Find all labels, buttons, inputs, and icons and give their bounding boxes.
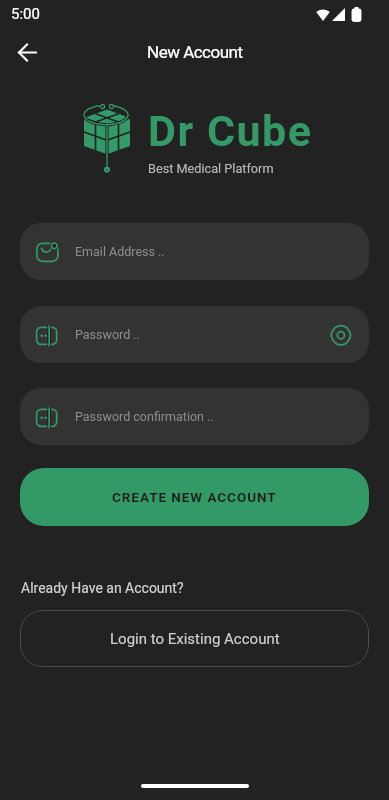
button[interactable]: Show password [326, 320, 356, 350]
staticText: Email Address .. [75, 244, 165, 259]
button[interactable]: Back [10, 34, 46, 70]
staticText: Login to Existing Account [110, 630, 280, 648]
staticText: Best Medical Platform [148, 161, 274, 176]
staticText: Password .. [75, 327, 140, 342]
staticText: Dr Cube [148, 106, 313, 156]
staticText: CREATE NEW ACCOUNT [112, 489, 277, 505]
staticText: New Account [147, 42, 243, 62]
button[interactable]: Password confirmation .. [20, 388, 369, 445]
staticText: Already Have an Account? [21, 580, 184, 596]
button[interactable]: CREATE NEW ACCOUNT [20, 468, 369, 526]
button[interactable]: Login to Existing Account [20, 610, 369, 667]
button[interactable]: Email Address .. [20, 223, 369, 280]
button[interactable]: Password .. [20, 306, 369, 363]
staticText: Password confirmation .. [75, 409, 214, 424]
staticText: 5:00 [11, 5, 40, 23]
